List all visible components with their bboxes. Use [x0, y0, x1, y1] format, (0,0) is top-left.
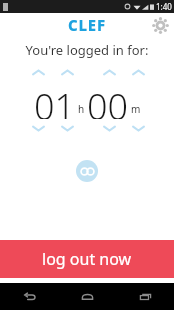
button[interactable]: Decrease — [59, 122, 76, 135]
button[interactable]: Stay logged in indefinitely — [76, 160, 98, 182]
staticText: 1:40 — [156, 1, 172, 12]
button[interactable]: Settings — [152, 17, 169, 34]
button[interactable]: Back — [0, 283, 58, 310]
button[interactable]: Home — [58, 283, 116, 310]
button[interactable]: Decrease — [30, 122, 47, 135]
staticText: CLEF — [68, 15, 106, 35]
button[interactable]: Increase — [59, 66, 76, 79]
staticText: h — [78, 102, 85, 116]
staticText: 01 — [34, 82, 76, 119]
staticText: m — [131, 102, 141, 116]
staticText: You're logged in for: — [0, 41, 174, 59]
button[interactable]: Increase — [130, 66, 147, 79]
button[interactable]: Recents — [116, 283, 174, 310]
button[interactable]: Increase — [30, 66, 47, 79]
button[interactable]: Increase — [101, 66, 118, 79]
staticText: 00 — [87, 82, 129, 119]
button[interactable]: log out now — [0, 240, 174, 278]
button[interactable]: Decrease — [130, 122, 147, 135]
button[interactable]: Decrease — [101, 122, 118, 135]
staticText: log out now — [42, 248, 132, 270]
